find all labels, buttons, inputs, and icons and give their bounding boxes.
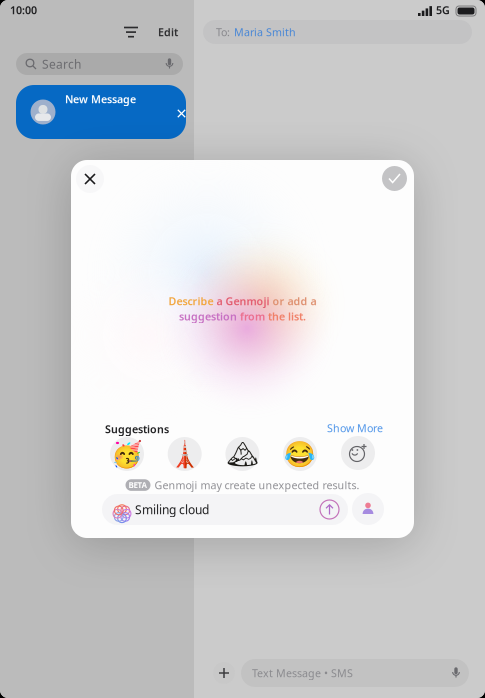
- staticText: BETA: [128, 480, 147, 490]
- staticText: To:: [216, 25, 230, 39]
- staticText: New Message: [65, 92, 136, 106]
- staticText: or add a: [272, 294, 316, 308]
- button[interactable]: Close: [76, 165, 104, 193]
- staticText: Genmoji may create unexpected results.: [154, 478, 359, 492]
- button[interactable]: Add attachment: [213, 662, 235, 684]
- staticText: Text Message • SMS: [252, 666, 353, 680]
- staticText: 😂: [284, 439, 316, 468]
- staticText: Search: [42, 56, 81, 72]
- button[interactable]: Show More: [323, 420, 387, 436]
- button[interactable]: 😂: [283, 437, 317, 471]
- staticText: Maria Smith: [234, 25, 296, 39]
- button[interactable]: Contacts: [352, 493, 384, 525]
- button[interactable]: Edit: [150, 23, 186, 41]
- button[interactable]: Done: [382, 166, 407, 191]
- button[interactable]: Submit prompt: [320, 500, 339, 519]
- staticText: suggestion: [179, 309, 240, 323]
- staticText: 🗼: [169, 439, 201, 468]
- staticText: 🏔: [226, 439, 258, 468]
- staticText: from: [240, 309, 268, 323]
- staticText: Edit: [158, 25, 178, 39]
- button[interactable]: More emoji: [341, 436, 375, 470]
- staticText: Smiling cloud: [135, 501, 209, 517]
- button[interactable]: Maria Smith: [234, 25, 296, 39]
- button[interactable]: 🗼: [168, 437, 202, 471]
- staticText: a Genmoji: [216, 294, 272, 308]
- staticText: 10:00: [10, 3, 37, 17]
- staticText: 5G: [436, 3, 450, 17]
- button[interactable]: 🥳: [110, 437, 144, 471]
- staticText: Describe: [168, 294, 216, 308]
- staticText: Show More: [327, 421, 383, 435]
- staticText: the list.: [268, 309, 306, 323]
- button[interactable]: 🏔: [225, 437, 259, 471]
- button[interactable]: Filter conversations: [120, 21, 142, 43]
- button[interactable]: New Message: [16, 85, 186, 139]
- staticText: Suggestions: [105, 422, 169, 436]
- staticText: 🥳: [111, 439, 143, 468]
